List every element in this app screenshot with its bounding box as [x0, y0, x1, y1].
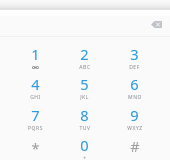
staticText: +	[83, 155, 87, 160]
button[interactable]: 8	[60, 102, 109, 132]
button[interactable]: 1	[11, 41, 60, 71]
button[interactable]: 9	[110, 102, 159, 132]
staticText: DEF	[129, 64, 140, 71]
staticText: *	[31, 138, 40, 158]
staticText: WXYZ	[127, 125, 143, 132]
staticText: 0	[80, 135, 89, 155]
staticText: 2	[80, 44, 89, 64]
staticText: TUV	[79, 125, 91, 132]
button[interactable]: 6	[110, 71, 159, 101]
button[interactable]: 7	[11, 102, 60, 132]
button[interactable]: 4	[11, 71, 60, 101]
button[interactable]: 2	[60, 41, 109, 71]
staticText: 5	[80, 74, 89, 94]
staticText: 1	[31, 44, 40, 64]
staticText: JKL	[80, 94, 89, 101]
staticText: MNO	[128, 94, 142, 101]
staticText: 3	[130, 44, 139, 64]
staticText: PQRS	[28, 125, 43, 132]
staticText: #	[130, 136, 140, 156]
button[interactable]: 5	[60, 71, 109, 101]
staticText: 8	[80, 105, 89, 125]
staticText: GHI	[30, 94, 41, 101]
button[interactable]: Backspace	[145, 13, 168, 36]
button[interactable]: 0	[60, 132, 109, 160]
staticText: 4	[31, 74, 40, 94]
staticText: 6	[130, 74, 139, 94]
staticText: 7	[31, 105, 40, 125]
button[interactable]: *	[11, 132, 60, 160]
staticText: 9	[130, 105, 139, 125]
staticText: ABC	[79, 64, 91, 71]
button[interactable]: 3	[110, 41, 159, 71]
button[interactable]: #	[110, 132, 159, 160]
